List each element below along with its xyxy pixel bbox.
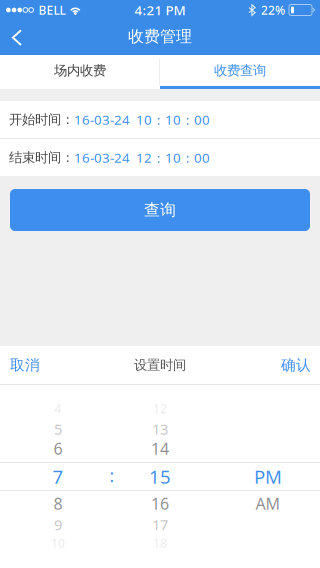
- staticText: 6: [53, 438, 62, 459]
- staticText: 17: [152, 515, 168, 534]
- staticText: 10: [51, 535, 65, 551]
- button[interactable]: 结束时间：: [0, 139, 320, 176]
- staticText: 8: [53, 493, 62, 514]
- staticText: 15: [149, 464, 171, 489]
- staticText: 4:21 PM: [134, 1, 185, 19]
- staticText: 18: [153, 535, 167, 551]
- staticText: 13: [152, 419, 168, 439]
- staticText: 设置时间: [134, 357, 186, 373]
- staticText: 12：10：00: [130, 149, 210, 166]
- staticText: 9: [54, 515, 62, 534]
- staticText: PM: [254, 464, 282, 489]
- staticText: 16-03-24: [74, 111, 130, 128]
- staticText: AM: [255, 493, 280, 514]
- staticText: 16: [151, 493, 169, 514]
- button[interactable]: 开始时间：: [0, 101, 320, 138]
- staticText: 10：10：00: [130, 111, 210, 128]
- staticText: BELL: [38, 2, 65, 18]
- button[interactable]: 场内收费: [0, 55, 160, 89]
- staticText: :: [109, 464, 114, 487]
- staticText: 22%: [261, 2, 285, 18]
- staticText: 16-03-24: [74, 149, 130, 166]
- staticText: 5: [54, 419, 62, 439]
- staticText: 场内收费: [54, 62, 106, 79]
- staticText: 收费查询: [214, 62, 266, 79]
- staticText: 确认: [281, 356, 311, 374]
- staticText: 14: [151, 438, 169, 459]
- staticText: 12: [153, 400, 167, 416]
- staticText: 4: [54, 400, 61, 416]
- button[interactable]: Back: [0, 20, 34, 55]
- button[interactable]: 取消: [0, 346, 80, 384]
- staticText: 7: [52, 464, 63, 489]
- button[interactable]: 查询: [10, 189, 310, 231]
- staticText: 取消: [10, 356, 40, 374]
- button[interactable]: 确认: [240, 346, 320, 384]
- button[interactable]: 收费查询: [160, 55, 320, 89]
- staticText: 收费管理: [128, 27, 192, 46]
- staticText: 查询: [144, 200, 176, 220]
- staticText: 开始时间：: [9, 111, 74, 128]
- staticText: 结束时间：: [9, 149, 74, 166]
